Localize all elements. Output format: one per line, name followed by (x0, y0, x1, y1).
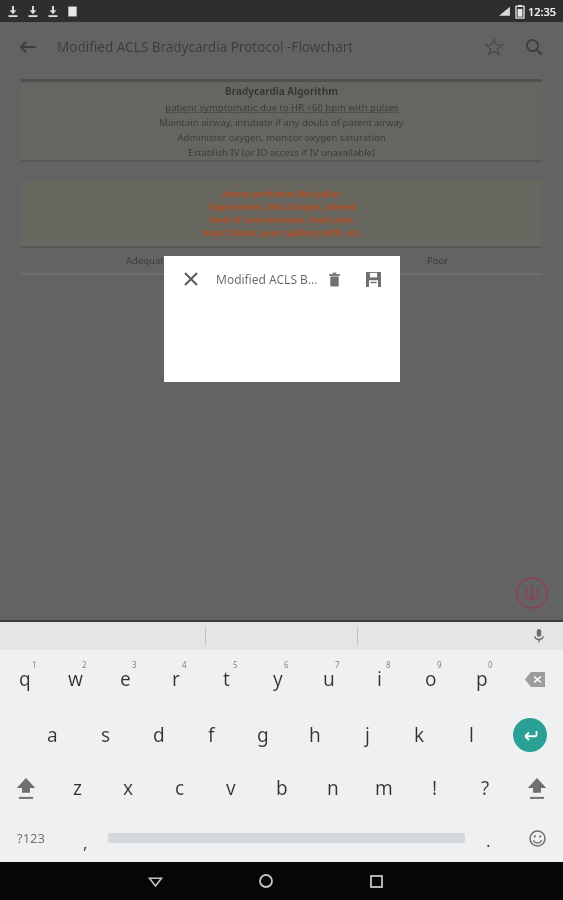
button[interactable]: l (445, 708, 497, 761)
button[interactable]: , (62, 814, 108, 862)
button[interactable]: Bookmark (475, 28, 513, 66)
button[interactable]: m (358, 761, 409, 814)
staticText: c (175, 775, 185, 801)
staticText: f (208, 722, 215, 748)
staticText: Adequate (126, 254, 170, 267)
button[interactable]: 3 (100, 650, 150, 708)
staticText: 5 (233, 659, 238, 670)
staticText: 7 (335, 659, 340, 670)
button[interactable]: 1 (0, 650, 50, 708)
button[interactable]: Backspace (507, 650, 563, 708)
staticText: z (73, 775, 82, 801)
staticText: . (486, 829, 491, 852)
button[interactable]: 2 (50, 650, 100, 708)
staticText: t (223, 666, 230, 692)
button[interactable]: Save (358, 264, 388, 294)
staticText: Maintain airway, intubate if any doubt o… (159, 116, 404, 129)
staticText: s (101, 722, 111, 748)
staticText: j (365, 722, 370, 748)
staticText: 6 (284, 659, 289, 670)
button[interactable]: 9 (405, 650, 456, 708)
button[interactable]: Search (515, 28, 553, 66)
staticText: level of consciousness, chest pain, (210, 214, 355, 226)
staticText: 12:35 (528, 4, 557, 19)
button[interactable]: n (307, 761, 358, 814)
button[interactable]: 6 (252, 650, 303, 708)
button[interactable]: Shift (511, 761, 563, 814)
button[interactable]: . (465, 814, 511, 862)
staticText: o (425, 666, 437, 692)
staticText: g (257, 722, 269, 748)
staticText: d (153, 722, 165, 748)
button[interactable]: Recents (321, 862, 432, 900)
button[interactable]: ECG monitor (515, 576, 549, 610)
button[interactable]: 4 (150, 650, 201, 708)
button[interactable]: Voice input (527, 624, 551, 648)
staticText: h (309, 722, 321, 748)
staticText: u (323, 666, 335, 692)
button[interactable]: g (237, 708, 289, 761)
staticText: Bradycardia Algorithm (225, 84, 338, 98)
staticText: y (273, 666, 283, 692)
button[interactable]: Emoji (511, 814, 563, 862)
staticText: Establish IV (or IO access if IV unavail… (188, 146, 375, 159)
button[interactable]: c (154, 761, 205, 814)
button[interactable]: 8 (354, 650, 405, 708)
staticText: n (327, 775, 339, 801)
button[interactable]: Home (210, 862, 321, 900)
button[interactable]: f (185, 708, 237, 761)
button[interactable]: Close (176, 264, 206, 294)
button[interactable]: h (289, 708, 341, 761)
button[interactable]: a (26, 708, 79, 761)
button[interactable]: ?123 (0, 814, 62, 862)
staticText: v (226, 775, 236, 801)
button[interactable]: s (79, 708, 132, 761)
staticText: 4 (182, 659, 187, 670)
staticText: ?123 (17, 829, 45, 847)
button[interactable]: Enter (497, 708, 563, 761)
button[interactable]: ! (409, 761, 460, 814)
staticText: w (68, 666, 83, 692)
button[interactable]: ? (460, 761, 511, 814)
staticText: a (47, 722, 58, 748)
staticText: heart failure, poor capillary refill, et… (203, 227, 361, 239)
button[interactable]: j (341, 708, 393, 761)
staticText: 2 (82, 659, 87, 670)
staticText: 9 (437, 659, 442, 670)
staticText: e (120, 666, 131, 692)
staticText: 1 (32, 659, 37, 670)
staticText: k (414, 722, 425, 748)
staticText: r (172, 666, 180, 692)
button[interactable]: d (132, 708, 185, 761)
staticText: hypotension, EKG changes, altered (209, 201, 356, 213)
button[interactable]: Shift (0, 761, 52, 814)
staticText: patient symptomatic due to HR <60 bpm wi… (165, 101, 399, 114)
button[interactable] (108, 814, 465, 862)
button[interactable]: 5 (201, 650, 252, 708)
staticText: 3 (132, 659, 137, 670)
staticText: 0 (488, 659, 493, 670)
button[interactable]: Delete (319, 264, 349, 294)
button[interactable]: b (256, 761, 307, 814)
staticText: i (377, 666, 382, 692)
button[interactable]: x (103, 761, 154, 814)
button[interactable]: Back (100, 862, 210, 900)
staticText: m (375, 775, 393, 801)
staticText: q (19, 666, 31, 692)
button[interactable]: v (205, 761, 256, 814)
button[interactable]: Back (8, 27, 48, 67)
staticText: Modified ACLS B... (216, 271, 319, 287)
staticText: Administer oxygen, monitor oxygen satura… (177, 131, 386, 144)
button[interactable]: 0 (456, 650, 507, 708)
staticText: ? (481, 775, 490, 801)
button[interactable]: k (393, 708, 445, 761)
staticText: p (476, 666, 488, 692)
staticText: 8 (386, 659, 391, 670)
staticText: x (123, 775, 134, 801)
staticText: b (276, 775, 288, 801)
staticText: , (83, 831, 88, 854)
staticText: ! (432, 775, 438, 801)
staticText: Poor (427, 254, 449, 267)
button[interactable]: z (52, 761, 103, 814)
button[interactable]: 7 (303, 650, 354, 708)
